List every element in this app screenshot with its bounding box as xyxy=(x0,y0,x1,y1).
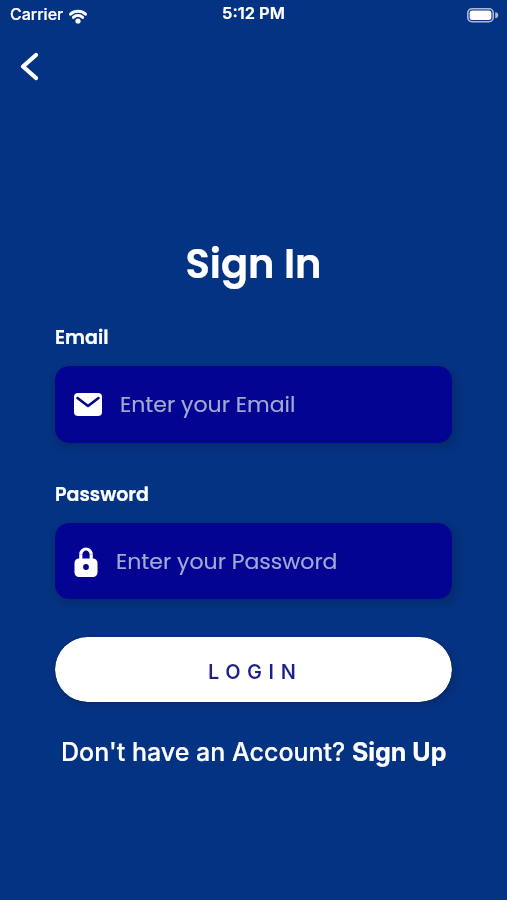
staticText: LOGIN xyxy=(208,660,303,684)
staticText: 5:12 PM xyxy=(0,3,507,23)
staticText: Carrier xyxy=(10,4,64,23)
staticText: Sign In xyxy=(0,236,507,292)
button[interactable]: Enter your Email xyxy=(55,366,452,443)
staticText: Enter your Password xyxy=(116,546,338,577)
staticText: Password xyxy=(55,481,149,508)
staticText: Don't have an Account? Sign Up xyxy=(61,737,447,767)
staticText: Email xyxy=(55,324,109,351)
button[interactable] xyxy=(7,44,51,88)
staticText: Enter your Email xyxy=(120,389,296,420)
button[interactable]: Don't have an Account? Sign Up xyxy=(0,737,507,767)
button[interactable]: Enter your Password xyxy=(55,523,452,599)
button[interactable]: LOGIN xyxy=(55,637,452,702)
